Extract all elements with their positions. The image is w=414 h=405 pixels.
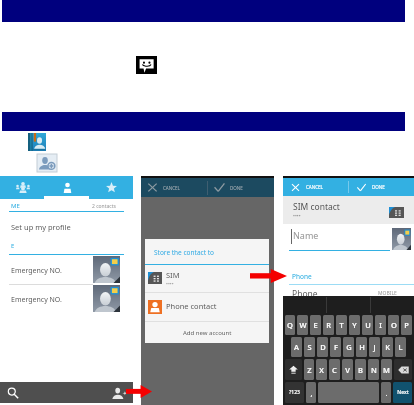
staticText: CANCEL [163, 185, 180, 191]
staticText: Name [293, 229, 319, 241]
button[interactable]: Emergency NO. [0, 256, 133, 285]
staticText: •••• [166, 281, 174, 288]
button[interactable]: S [304, 337, 315, 357]
button[interactable]: DONE [208, 178, 274, 197]
button[interactable]: DONE [349, 178, 414, 196]
staticText: C [332, 365, 337, 375]
button[interactable]: K [382, 337, 393, 357]
staticText: •••• [293, 213, 301, 220]
button[interactable]: Shift [285, 359, 302, 380]
button[interactable]: Contacts [45, 176, 89, 199]
staticText: , [310, 388, 313, 398]
staticText: Q [287, 320, 293, 330]
staticText: Store the contact to [154, 248, 214, 257]
button[interactable]: O [388, 315, 399, 335]
button[interactable]: ?123 [285, 382, 304, 403]
button[interactable]: A [291, 337, 302, 357]
staticText: L [398, 342, 403, 352]
staticText: O [391, 320, 397, 330]
staticText: Emergency NO. [11, 295, 62, 305]
button[interactable]: T [336, 315, 347, 335]
staticText: F [334, 342, 338, 352]
staticText: W [299, 320, 307, 330]
staticText: SIM [166, 270, 180, 280]
staticText: U [365, 320, 371, 330]
button[interactable]: Q [285, 315, 295, 335]
staticText: E [11, 242, 15, 250]
button[interactable]: Add new account [145, 322, 269, 343]
staticText: Set up my profile [11, 222, 71, 232]
staticText: ?123 [289, 389, 300, 396]
staticText: A [294, 342, 299, 352]
button[interactable]: Y [349, 315, 360, 335]
staticText: X [319, 365, 324, 375]
button[interactable]: B [355, 359, 366, 380]
staticText: DONE [230, 185, 243, 191]
button[interactable]: , [306, 382, 316, 403]
staticText: Phone [292, 272, 312, 281]
staticText: M [383, 365, 390, 375]
button[interactable]: Add photo [392, 228, 411, 250]
staticText: N [371, 365, 377, 375]
staticText: R [326, 320, 331, 330]
button[interactable]: G [343, 337, 354, 357]
staticText: V [345, 365, 350, 375]
staticText: 2 contacts [92, 203, 116, 210]
staticText: ME [11, 202, 20, 210]
staticText: B [358, 365, 363, 375]
button[interactable]: V [342, 359, 353, 380]
staticText: DONE [372, 184, 385, 190]
button[interactable]: Add contact [112, 387, 127, 399]
button[interactable]: X [316, 359, 327, 380]
button[interactable]: R [323, 315, 334, 335]
button[interactable]: D [317, 337, 328, 357]
staticText: Y [352, 320, 357, 330]
button[interactable]: L [395, 337, 406, 357]
staticText: . [385, 388, 388, 398]
button[interactable]: SIM contact [283, 196, 414, 224]
button[interactable]: U [362, 315, 373, 335]
button[interactable]: Set up my profile [0, 216, 133, 238]
staticText: Add new account [183, 329, 232, 337]
button[interactable]: Search [7, 387, 19, 399]
staticText: H [359, 342, 365, 352]
button[interactable]: Z [304, 359, 314, 380]
staticText: CANCEL [306, 184, 323, 190]
staticText: E [313, 320, 318, 330]
button[interactable]: SIM [145, 265, 269, 292]
button[interactable]: P [401, 315, 412, 335]
button[interactable]: Emergency NO. [0, 285, 133, 314]
staticText: S [307, 342, 312, 352]
button[interactable]: Backspace [394, 359, 412, 380]
button[interactable]: H [356, 337, 367, 357]
button[interactable]: F [330, 337, 341, 357]
button[interactable]: Next [393, 382, 412, 403]
button[interactable]: J [369, 337, 380, 357]
staticText: I [379, 320, 382, 330]
staticText: Z [307, 365, 312, 375]
button[interactable]: Favourites [89, 176, 133, 199]
button[interactable]: E [310, 315, 321, 335]
staticText: Next [397, 389, 409, 396]
button[interactable]: Groups [0, 176, 45, 199]
button[interactable]: M [381, 359, 392, 380]
button[interactable]: . [381, 382, 391, 403]
staticText: G [346, 342, 352, 352]
staticText: J [373, 342, 376, 352]
button[interactable]: Contacts app [28, 133, 46, 151]
staticText: MOBILE [378, 290, 397, 297]
staticText: SIM contact [293, 201, 340, 213]
staticText: P [404, 320, 409, 330]
button[interactable]: Phone contact [145, 293, 269, 321]
button[interactable]: CANCEL [141, 178, 207, 197]
staticText: D [320, 342, 326, 352]
button[interactable]: N [368, 359, 379, 380]
staticText: Emergency NO. [11, 266, 62, 276]
staticText: K [385, 342, 390, 352]
button[interactable]: CANCEL [283, 178, 348, 196]
button[interactable]: C [329, 359, 340, 380]
button[interactable]: W [297, 315, 308, 335]
button[interactable]: Add contact [37, 154, 57, 172]
button[interactable]: I [375, 315, 386, 335]
